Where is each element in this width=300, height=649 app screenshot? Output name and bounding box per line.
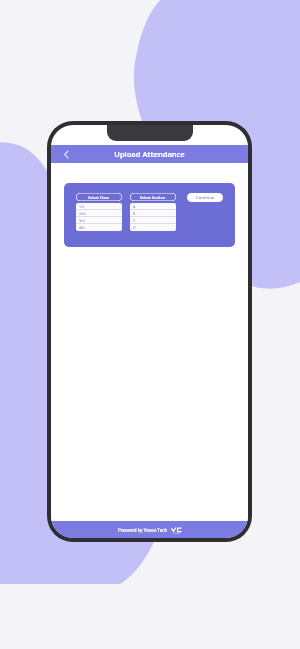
staticText: 1st — [79, 204, 85, 209]
button[interactable]: D — [130, 224, 176, 231]
staticText: Powered by Veeso Tech — [118, 527, 168, 533]
button[interactable]: 1st — [76, 203, 122, 210]
staticText: 4th — [79, 225, 85, 230]
staticText: Select Section — [140, 195, 166, 200]
staticText: 3rd — [79, 218, 85, 223]
button[interactable]: Select Class — [76, 193, 122, 201]
staticText: A — [133, 204, 136, 209]
button[interactable]: A — [130, 203, 176, 210]
staticText: C — [133, 218, 136, 223]
staticText: D — [133, 225, 136, 230]
button[interactable]: C — [130, 217, 176, 224]
button[interactable]: 3rd — [76, 217, 122, 224]
button[interactable]: B — [130, 210, 176, 217]
staticText: Upload Attendance — [114, 149, 185, 159]
staticText: Select Class — [88, 195, 110, 200]
staticText: 2nd — [79, 211, 86, 216]
staticText: Continue — [196, 195, 215, 201]
button[interactable]: 4th — [76, 224, 122, 231]
button[interactable]: 2nd — [76, 210, 122, 217]
button[interactable]: Back — [59, 147, 73, 161]
button[interactable]: Select Section — [130, 193, 176, 201]
button[interactable]: Continue — [187, 193, 223, 202]
staticText: B — [133, 211, 136, 216]
other: Veeso Tech logo — [171, 526, 182, 534]
